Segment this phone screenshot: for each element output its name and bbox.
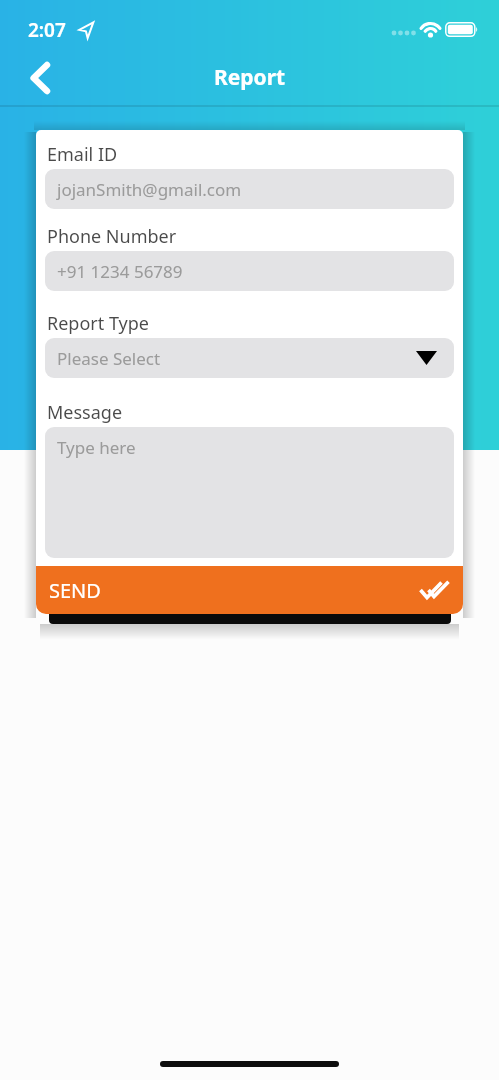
staticText: Message	[47, 400, 123, 425]
staticText: Report	[214, 63, 286, 92]
staticText: Report Type	[47, 311, 149, 336]
button[interactable]: +91 1234 56789	[45, 251, 454, 291]
staticText: Email ID	[47, 142, 118, 167]
button[interactable]: Please Select	[45, 338, 454, 378]
staticText: jojanSmith@gmail.com	[57, 178, 242, 201]
staticText: SEND	[49, 577, 101, 604]
staticText: +91 1234 56789	[57, 260, 183, 283]
staticText: Phone Number	[47, 224, 177, 249]
staticText: 2:07	[28, 17, 66, 43]
button[interactable]: jojanSmith@gmail.com	[45, 169, 454, 209]
button[interactable]: SEND	[36, 566, 463, 614]
button[interactable]	[16, 56, 64, 100]
staticText: Type here	[57, 436, 136, 459]
staticText: Please Select	[57, 347, 161, 370]
button[interactable]: Type here	[45, 427, 454, 558]
